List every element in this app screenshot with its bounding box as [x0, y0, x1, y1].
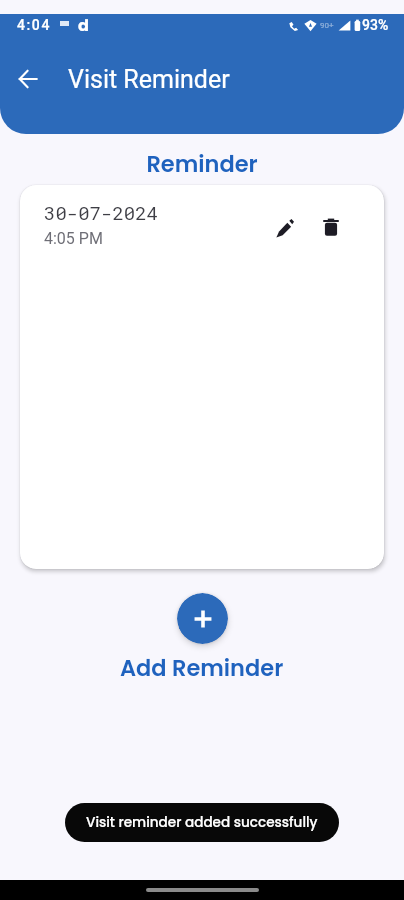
staticText: 93%: [362, 17, 389, 33]
button[interactable]: Delete: [314, 211, 348, 245]
button[interactable]: Edit: [268, 211, 302, 245]
staticText: Visit Reminder: [68, 65, 230, 94]
staticText: d: [78, 14, 89, 36]
staticText: Reminder: [0, 148, 404, 179]
button[interactable]: Add reminder: [177, 593, 228, 644]
button[interactable]: Back: [10, 61, 46, 97]
staticText: 4:04: [17, 17, 51, 33]
staticText: Visit reminder added successfully: [86, 813, 318, 832]
button[interactable]: Visit reminder added successfully: [65, 803, 339, 842]
button[interactable]: Add Reminder: [120, 652, 284, 683]
staticText: 30-07-2024: [44, 200, 159, 225]
staticText: 90+: [320, 21, 334, 30]
staticText: 4:05 PM: [44, 229, 103, 248]
